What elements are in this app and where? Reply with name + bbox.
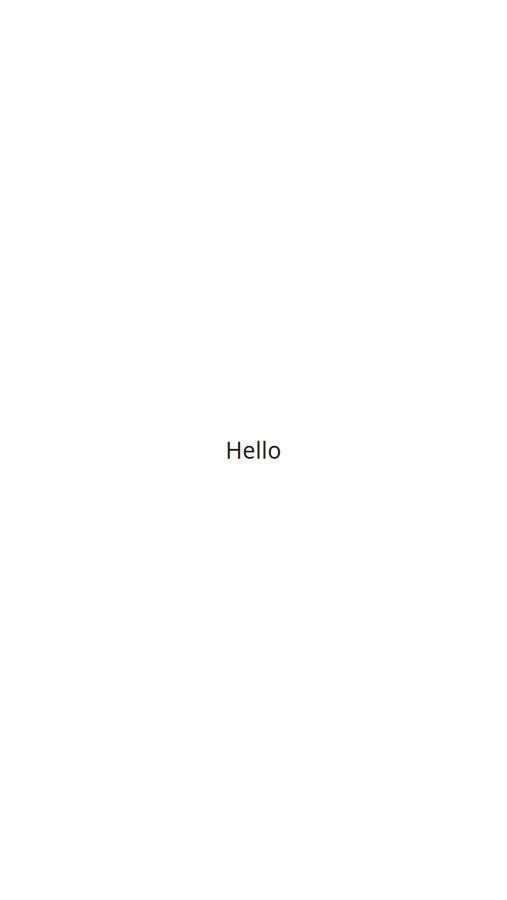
- staticText: Hello: [225, 435, 281, 465]
